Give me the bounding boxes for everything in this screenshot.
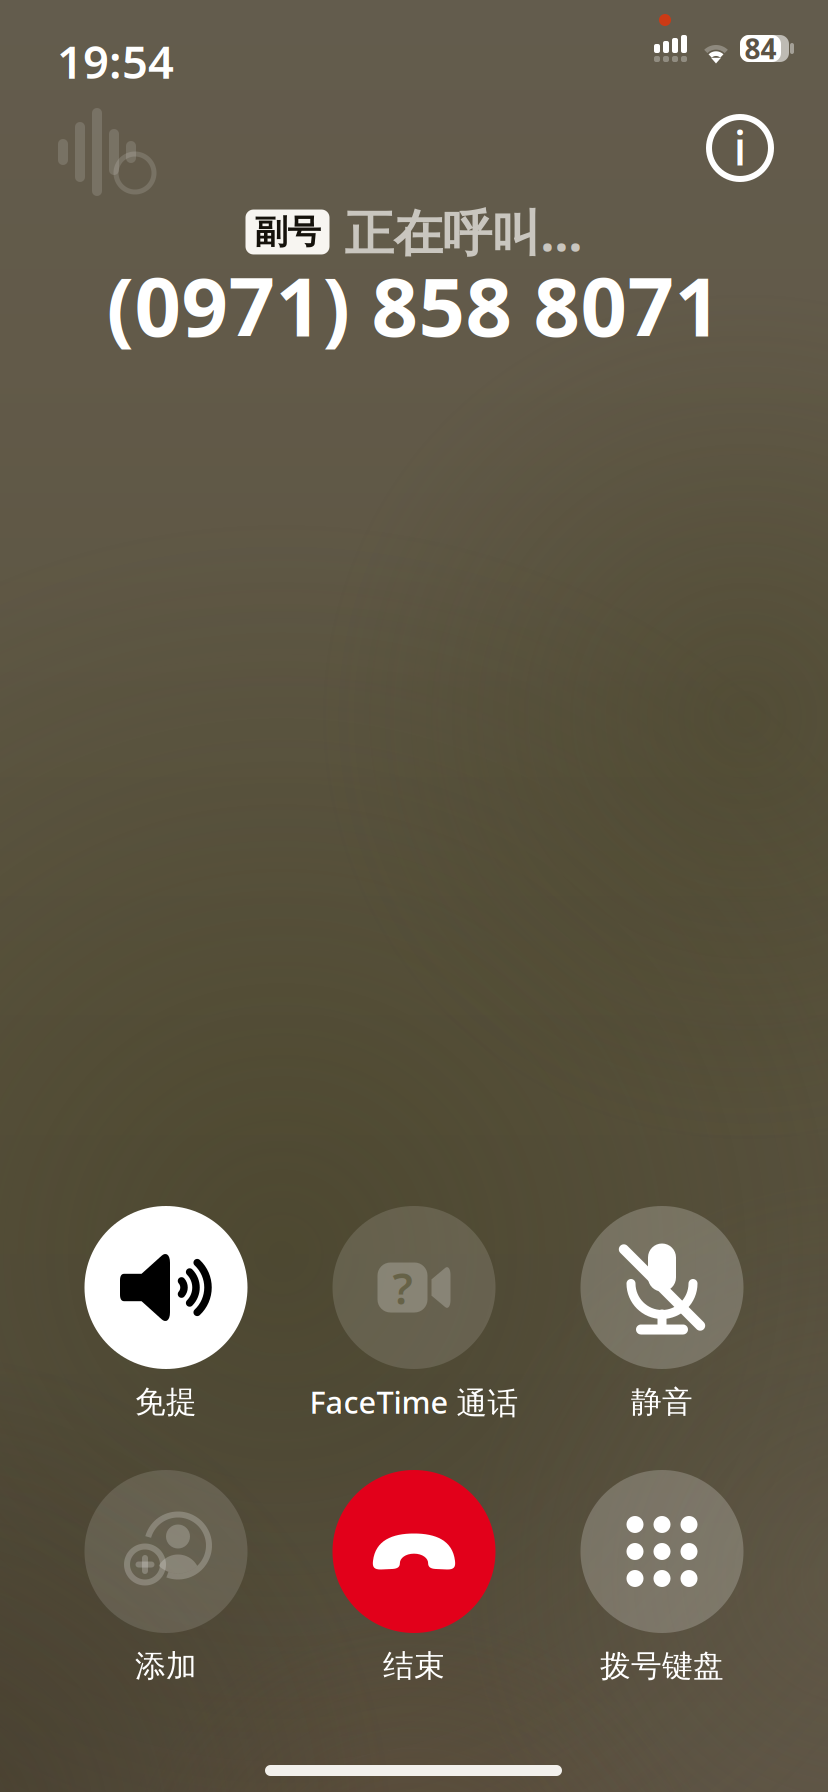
staticText: 拨号键盘	[600, 1647, 724, 1685]
staticText: 结束	[383, 1647, 445, 1685]
staticText: ?	[392, 1258, 412, 1317]
button[interactable]: 静音	[538, 1206, 786, 1422]
staticText: 免提	[135, 1383, 197, 1421]
staticText: 静音	[631, 1383, 693, 1421]
staticText: 19:54	[57, 31, 174, 91]
button[interactable]: 免提	[42, 1206, 290, 1422]
button[interactable]: 结束	[290, 1470, 538, 1686]
button[interactable]: ?	[290, 1206, 538, 1422]
staticText: 添加	[135, 1647, 197, 1685]
staticText: 正在呼叫...	[344, 199, 582, 265]
button[interactable]: 拨号键盘	[538, 1470, 786, 1686]
button[interactable]: Call details	[694, 102, 786, 194]
staticText: 副号	[254, 211, 320, 252]
staticText: (0971) 858 8071	[106, 251, 721, 359]
staticText: 84	[744, 30, 776, 67]
staticText: FaceTime 通话	[309, 1382, 518, 1422]
staticText: i	[733, 115, 746, 179]
button[interactable]: 添加	[42, 1470, 290, 1686]
